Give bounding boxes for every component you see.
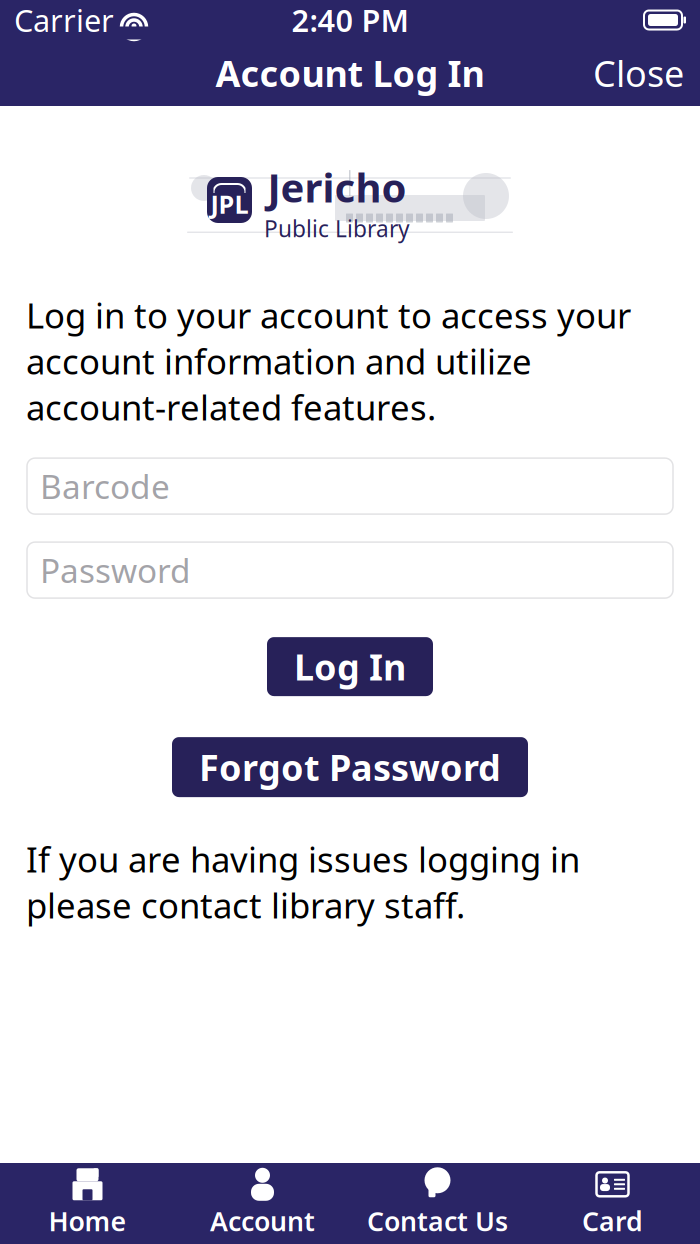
button[interactable]: Close bbox=[579, 41, 698, 105]
button[interactable]: Card bbox=[525, 1163, 700, 1244]
staticText: Log in to your account to access your ac… bbox=[26, 292, 631, 430]
button[interactable]: Log In bbox=[267, 637, 433, 696]
staticText: Card bbox=[582, 1203, 643, 1239]
staticText: 2:40 PM bbox=[291, 0, 408, 40]
staticText: Home bbox=[48, 1203, 126, 1239]
button[interactable]: Account bbox=[175, 1163, 350, 1244]
button[interactable]: Forgot Password bbox=[172, 737, 528, 797]
staticText: Log In bbox=[294, 643, 406, 690]
staticText: Carrier bbox=[14, 0, 114, 40]
button[interactable]: Contact Us bbox=[350, 1163, 525, 1244]
staticText: If you are having issues logging in plea… bbox=[26, 836, 580, 928]
staticText: Public Library bbox=[264, 213, 410, 244]
staticText: Close bbox=[593, 49, 684, 97]
staticText: Password bbox=[40, 548, 191, 592]
staticText: JPL bbox=[210, 187, 248, 221]
staticText: Barcode bbox=[40, 464, 170, 508]
staticText: Forgot Password bbox=[199, 743, 501, 791]
staticText: Jericho bbox=[267, 160, 406, 213]
button[interactable]: Home bbox=[0, 1163, 175, 1244]
staticText: Account Log In bbox=[215, 49, 484, 97]
staticText: Contact Us bbox=[367, 1203, 508, 1239]
staticText: Account bbox=[210, 1203, 315, 1239]
